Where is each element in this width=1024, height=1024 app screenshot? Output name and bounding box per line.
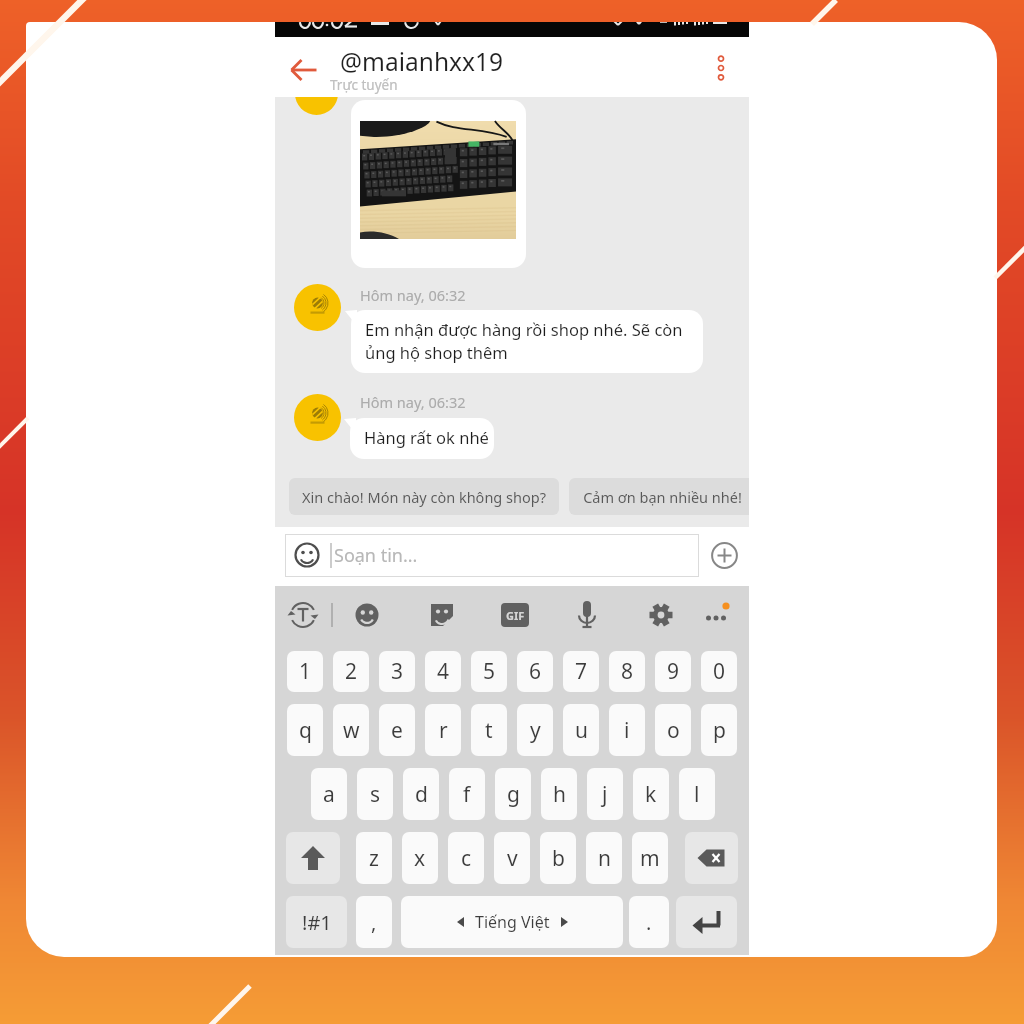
button[interactable]: o xyxy=(655,704,691,756)
button[interactable]: Xin chào! Món này còn không shop? xyxy=(289,478,559,515)
button[interactable]: u xyxy=(563,704,599,756)
button[interactable]: g xyxy=(495,768,531,820)
staticText: 1 xyxy=(299,657,312,686)
button[interactable]: y xyxy=(517,704,553,756)
button[interactable]: 5 xyxy=(471,651,507,692)
staticText: x xyxy=(414,844,426,873)
staticText: b xyxy=(552,844,565,873)
button[interactable]: i xyxy=(609,704,645,756)
staticText: y xyxy=(530,716,541,745)
button[interactable]: 3 xyxy=(379,651,415,692)
staticText: 3 xyxy=(391,657,404,686)
staticText: Tiếng Việt xyxy=(475,911,550,933)
staticText: Cảm ơn bạn nhiều nhé! xyxy=(583,487,742,507)
staticText: 7 xyxy=(575,657,588,686)
staticText: a xyxy=(323,780,335,809)
staticText: Em nhận được hàng rồi shop nhé. Sẽ còn ủ… xyxy=(365,318,683,364)
staticText: e xyxy=(391,716,403,745)
button[interactable]: c xyxy=(448,832,484,884)
staticText: g xyxy=(507,780,520,809)
button[interactable]: Translate xyxy=(287,599,319,631)
button[interactable]: 2 xyxy=(333,651,369,692)
button[interactable]: d xyxy=(403,768,439,820)
staticText: Hôm nay, 06:32 xyxy=(360,285,466,305)
staticText: n xyxy=(598,844,611,873)
button[interactable]: 9 xyxy=(655,651,691,692)
button[interactable]: 1 xyxy=(287,651,323,692)
staticText: z xyxy=(369,844,379,873)
button[interactable]: m xyxy=(632,832,668,884)
button[interactable]: v xyxy=(494,832,530,884)
staticText: q xyxy=(299,716,312,745)
staticText: p xyxy=(713,716,726,745)
button[interactable]: h xyxy=(541,768,577,820)
button[interactable]: x xyxy=(402,832,438,884)
button[interactable]: e xyxy=(379,704,415,756)
staticText: l xyxy=(694,780,700,809)
button[interactable]: Tiếng Việt xyxy=(401,896,623,948)
button[interactable]: j xyxy=(587,768,623,820)
staticText: !#1 xyxy=(302,909,332,936)
staticText: m xyxy=(640,844,660,873)
button[interactable]: Backspace xyxy=(685,832,738,884)
button[interactable]: Add attachment xyxy=(710,541,739,570)
staticText: . xyxy=(646,909,652,936)
button[interactable]: a xyxy=(311,768,347,820)
button[interactable]: l xyxy=(679,768,715,820)
button[interactable]: Enter xyxy=(676,896,737,948)
button[interactable]: 8 xyxy=(609,651,645,692)
staticText: s xyxy=(370,780,381,809)
button[interactable]: z xyxy=(356,832,392,884)
button[interactable]: GIF xyxy=(501,603,529,627)
button[interactable]: , xyxy=(356,896,392,948)
button[interactable]: Back xyxy=(284,49,324,89)
button[interactable]: More xyxy=(702,601,730,629)
button[interactable]: Sticker xyxy=(428,601,456,629)
staticText: @maianhxx19 xyxy=(340,45,503,78)
button[interactable]: b xyxy=(540,832,576,884)
button[interactable]: r xyxy=(425,704,461,756)
button[interactable]: p xyxy=(701,704,737,756)
staticText: Hàng rất ok nhé xyxy=(364,426,489,448)
staticText: o xyxy=(667,716,680,745)
button[interactable]: 7 xyxy=(563,651,599,692)
button[interactable]: Cảm ơn bạn nhiều nhé! xyxy=(569,478,749,515)
staticText: Soạn tin... xyxy=(334,543,418,568)
staticText: d xyxy=(415,780,428,809)
button[interactable]: . xyxy=(629,896,669,948)
button[interactable]: !#1 xyxy=(286,896,347,948)
staticText: 8 xyxy=(621,657,634,686)
button[interactable]: s xyxy=(357,768,393,820)
staticText: 2 xyxy=(345,657,358,686)
button[interactable]: Shift xyxy=(286,832,340,884)
staticText: w xyxy=(343,716,360,745)
button[interactable]: 4 xyxy=(425,651,461,692)
button[interactable]: Soạn tin... xyxy=(285,534,699,577)
staticText: 6 xyxy=(529,657,542,686)
button[interactable]: 6 xyxy=(517,651,553,692)
button[interactable]: k xyxy=(633,768,669,820)
button[interactable]: 0 xyxy=(701,651,737,692)
staticText: k xyxy=(645,780,657,809)
button[interactable]: w xyxy=(333,704,369,756)
staticText: GIF xyxy=(506,608,525,623)
staticText: r xyxy=(439,716,448,745)
button[interactable]: Emoji xyxy=(353,601,381,629)
button[interactable]: q xyxy=(287,704,323,756)
button[interactable]: t xyxy=(471,704,507,756)
button[interactable]: Voice input xyxy=(573,600,601,628)
button[interactable]: n xyxy=(586,832,622,884)
staticText: v xyxy=(507,844,518,873)
staticText: h xyxy=(553,780,566,809)
staticText: 4 xyxy=(437,657,450,686)
button[interactable]: f xyxy=(449,768,485,820)
staticText: t xyxy=(485,716,493,745)
button[interactable]: Settings xyxy=(647,601,675,629)
staticText: 9 xyxy=(667,657,680,686)
staticText: Hôm nay, 06:32 xyxy=(360,392,466,412)
staticText: c xyxy=(461,844,472,873)
staticText: , xyxy=(371,909,377,936)
button[interactable]: More options xyxy=(705,48,737,80)
staticText: Xin chào! Món này còn không shop? xyxy=(302,487,546,507)
staticText: f xyxy=(463,780,471,809)
